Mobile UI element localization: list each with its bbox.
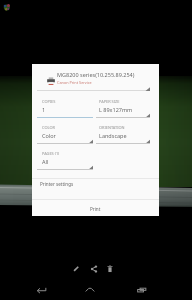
staticText: PAGES (1) xyxy=(42,151,60,156)
staticText: Color xyxy=(42,132,56,139)
staticText: Print xyxy=(90,206,101,212)
button[interactable]: Back xyxy=(32,280,52,300)
staticText: PAPER SIZE xyxy=(99,99,120,104)
button[interactable]: Printer settings xyxy=(32,179,159,199)
button[interactable]: Delete xyxy=(103,262,117,276)
button[interactable]: PAGES (1) xyxy=(37,152,93,174)
button[interactable]: ORIENTATION xyxy=(96,126,150,148)
staticText: COPIES xyxy=(42,99,56,104)
button[interactable]: Share xyxy=(87,262,101,276)
button[interactable]: Print xyxy=(32,200,159,216)
button[interactable]: Recent apps xyxy=(132,280,152,300)
staticText: Landscape xyxy=(99,132,127,139)
button[interactable]: COLOR xyxy=(37,126,93,148)
button[interactable]: PAPER SIZE xyxy=(96,100,150,122)
button[interactable]: COPIES xyxy=(37,100,93,122)
staticText: L 89x127mm xyxy=(99,106,133,113)
button[interactable]: Home xyxy=(80,280,100,300)
staticText: COLOR xyxy=(42,125,55,130)
staticText: 1 xyxy=(42,106,46,113)
staticText: MG8200 series(10.255.89.254) xyxy=(57,71,135,78)
staticText: All xyxy=(42,158,49,165)
staticText: Printer settings xyxy=(40,181,74,187)
staticText: Canon Print Service xyxy=(57,80,92,85)
button[interactable]: Edit xyxy=(69,262,83,276)
button[interactable]: MG8200 series(10.255.89.254) xyxy=(32,64,159,91)
staticText: ORIENTATION xyxy=(99,125,125,130)
